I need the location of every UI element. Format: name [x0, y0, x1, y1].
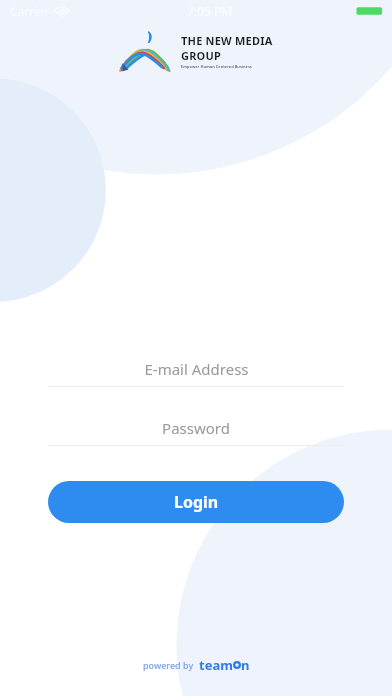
- staticText: powered by: [143, 659, 194, 671]
- staticText: Password: [162, 418, 230, 438]
- button[interactable]: Login: [48, 481, 344, 523]
- staticText: Empower Human Centered Business: [181, 64, 252, 69]
- staticText: Login: [174, 491, 219, 513]
- button[interactable]: powered by: [143, 656, 250, 674]
- button[interactable]: Password: [48, 411, 344, 446]
- staticText: team: [199, 656, 233, 674]
- staticText: E-mail Address: [144, 359, 249, 379]
- staticText: THE NEW MEDIA: [181, 33, 273, 48]
- button[interactable]: E-mail Address: [48, 352, 344, 387]
- staticText: n: [241, 656, 250, 674]
- staticText: GROUP: [181, 48, 222, 63]
